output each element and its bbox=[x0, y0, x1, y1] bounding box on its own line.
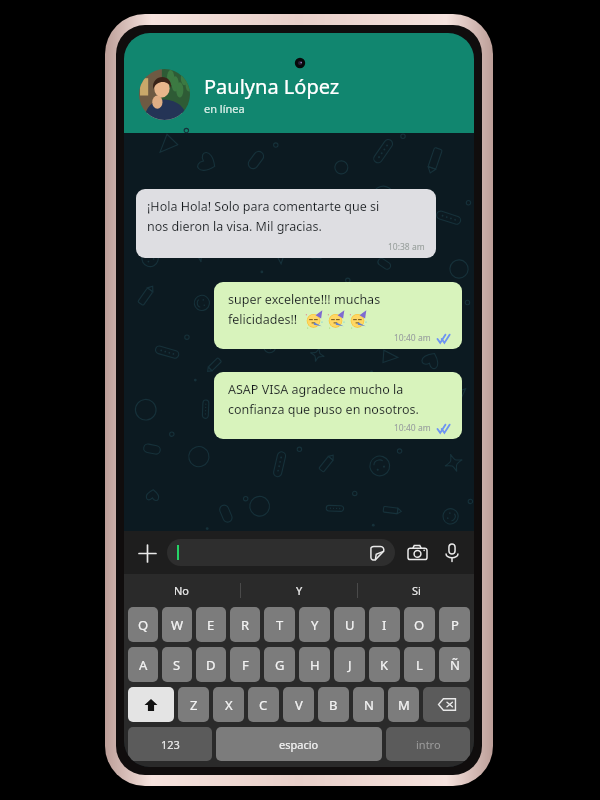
button[interactable]: F bbox=[230, 647, 260, 682]
button[interactable]: R bbox=[230, 607, 260, 642]
staticText: V bbox=[295, 696, 303, 714]
button[interactable]: S bbox=[162, 647, 192, 682]
staticText: P bbox=[451, 616, 459, 634]
button[interactable]: K bbox=[369, 647, 400, 682]
button[interactable] bbox=[167, 539, 395, 566]
staticText: espacio bbox=[279, 737, 319, 752]
staticText: felicidades!! bbox=[228, 311, 298, 328]
button[interactable]: U bbox=[334, 607, 365, 642]
button[interactable]: Si bbox=[358, 574, 474, 607]
button[interactable]: Borrar bbox=[423, 687, 470, 722]
button[interactable]: Y bbox=[241, 574, 357, 607]
staticText: intro bbox=[416, 737, 441, 752]
staticText: 10:40 am bbox=[394, 332, 431, 344]
button[interactable]: Cámara bbox=[404, 540, 430, 566]
staticText: I bbox=[382, 616, 387, 634]
staticText: nos dieron la visa. Mil gracias. bbox=[147, 218, 322, 235]
button[interactable]: 123 bbox=[128, 727, 212, 761]
button[interactable]: Ñ bbox=[439, 647, 470, 682]
button[interactable]: E bbox=[196, 607, 226, 642]
button[interactable]: L bbox=[404, 647, 435, 682]
staticText: ¡Hola Hola! Solo para comentarte que si bbox=[147, 198, 380, 215]
staticText: K bbox=[380, 656, 389, 674]
staticText: No bbox=[174, 583, 190, 598]
staticText: U bbox=[345, 616, 355, 634]
staticText: M bbox=[398, 696, 410, 714]
staticText: X bbox=[225, 696, 233, 714]
staticText: 10:40 am bbox=[394, 422, 431, 434]
button[interactable]: super excelente!!! muchas bbox=[214, 282, 462, 349]
button[interactable]: G bbox=[264, 647, 295, 682]
staticText: S bbox=[173, 656, 181, 674]
button[interactable]: No bbox=[124, 574, 240, 607]
staticText: Si bbox=[412, 583, 421, 598]
button[interactable]: V bbox=[283, 687, 314, 722]
button[interactable]: A bbox=[128, 647, 158, 682]
staticText: Y bbox=[311, 616, 319, 634]
button[interactable]: Mayúsculas bbox=[128, 687, 174, 722]
button[interactable]: intro bbox=[386, 727, 470, 761]
staticText: L bbox=[416, 656, 423, 674]
button[interactable]: ¡Hola Hola! Solo para comentarte que si bbox=[136, 189, 436, 258]
staticText: en línea bbox=[204, 101, 245, 116]
staticText: Q bbox=[138, 616, 149, 634]
button[interactable]: Foto de perfil bbox=[139, 69, 190, 120]
button[interactable]: D bbox=[196, 647, 226, 682]
button[interactable]: P bbox=[439, 607, 470, 642]
button[interactable]: Foto de perfil bbox=[124, 33, 474, 133]
staticText: E bbox=[207, 616, 215, 634]
staticText: R bbox=[241, 616, 250, 634]
staticText: G bbox=[275, 656, 285, 674]
staticText: C bbox=[259, 696, 268, 714]
button[interactable]: espacio bbox=[216, 727, 382, 761]
button[interactable]: Y bbox=[299, 607, 330, 642]
staticText: T bbox=[276, 616, 284, 634]
button[interactable]: Mensaje de voz bbox=[439, 540, 465, 566]
staticText: N bbox=[364, 696, 374, 714]
button[interactable]: Z bbox=[178, 687, 209, 722]
staticText: F bbox=[242, 656, 249, 674]
staticText: J bbox=[348, 656, 352, 674]
staticText: Ñ bbox=[450, 656, 460, 674]
button[interactable]: Adjuntar bbox=[133, 539, 161, 567]
button[interactable]: O bbox=[404, 607, 435, 642]
button[interactable]: W bbox=[162, 607, 192, 642]
staticText: W bbox=[171, 616, 184, 634]
staticText: Y bbox=[296, 583, 303, 598]
staticText: confianza que puso en nosotros. bbox=[228, 401, 419, 418]
staticText: Paulyna López bbox=[204, 73, 340, 100]
staticText: B bbox=[329, 696, 338, 714]
staticText: 123 bbox=[161, 737, 180, 752]
staticText: 10:38 am bbox=[388, 241, 425, 253]
button[interactable]: X bbox=[213, 687, 244, 722]
button[interactable]: Q bbox=[128, 607, 158, 642]
button[interactable]: B bbox=[318, 687, 349, 722]
button[interactable]: I bbox=[369, 607, 400, 642]
staticText: super excelente!!! muchas bbox=[228, 291, 381, 308]
staticText: A bbox=[139, 656, 148, 674]
button[interactable]: N bbox=[353, 687, 384, 722]
staticText: Z bbox=[190, 696, 198, 714]
button[interactable]: H bbox=[299, 647, 330, 682]
button[interactable]: M bbox=[388, 687, 419, 722]
button[interactable]: ASAP VISA agradece mucho la bbox=[214, 372, 462, 439]
staticText: O bbox=[414, 616, 425, 634]
staticText: H bbox=[310, 656, 320, 674]
button[interactable]: C bbox=[248, 687, 279, 722]
staticText: D bbox=[206, 656, 216, 674]
button[interactable]: J bbox=[334, 647, 365, 682]
button[interactable]: T bbox=[264, 607, 295, 642]
staticText: ASAP VISA agradece mucho la bbox=[228, 381, 404, 398]
